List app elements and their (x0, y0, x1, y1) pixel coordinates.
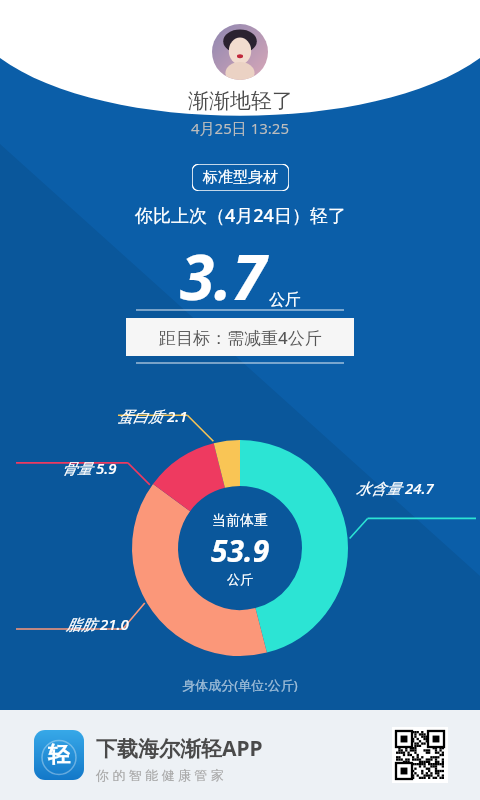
staticText: 脂肪 21.0 (66, 614, 129, 634)
staticText: 渐渐地轻了 (188, 88, 293, 114)
staticText: 53.9 (211, 530, 270, 571)
staticText: 公斤 (227, 571, 253, 587)
staticText: 蛋白质 2.1 (118, 406, 188, 426)
staticText: 你 的 智 能 健 康 管 家 (96, 766, 224, 784)
staticText: 4月25日 13:25 (191, 118, 289, 138)
staticText: 标准型身材 (203, 168, 278, 187)
staticText: 骨量 5.9 (62, 458, 117, 478)
button[interactable]: 轻 (0, 710, 480, 800)
button[interactable]: User avatar (212, 24, 268, 80)
staticText: 水含量 24.7 (356, 478, 434, 498)
staticText: 距目标：需减重4公斤 (159, 326, 322, 349)
staticText: 当前体重 (212, 512, 268, 530)
staticText: 身体成分(单位:公斤) (0, 676, 480, 694)
staticText: 3.7 (180, 234, 267, 318)
button[interactable]: 距目标：需减重4公斤 (126, 318, 354, 356)
staticText: 公斤 (269, 290, 301, 310)
staticText: 轻 (48, 741, 70, 769)
staticText: 下载海尔渐轻APP (96, 734, 263, 763)
staticText: 你比上次（4月24日）轻了 (135, 203, 346, 228)
button[interactable]: 标准型身材 (192, 164, 289, 191)
